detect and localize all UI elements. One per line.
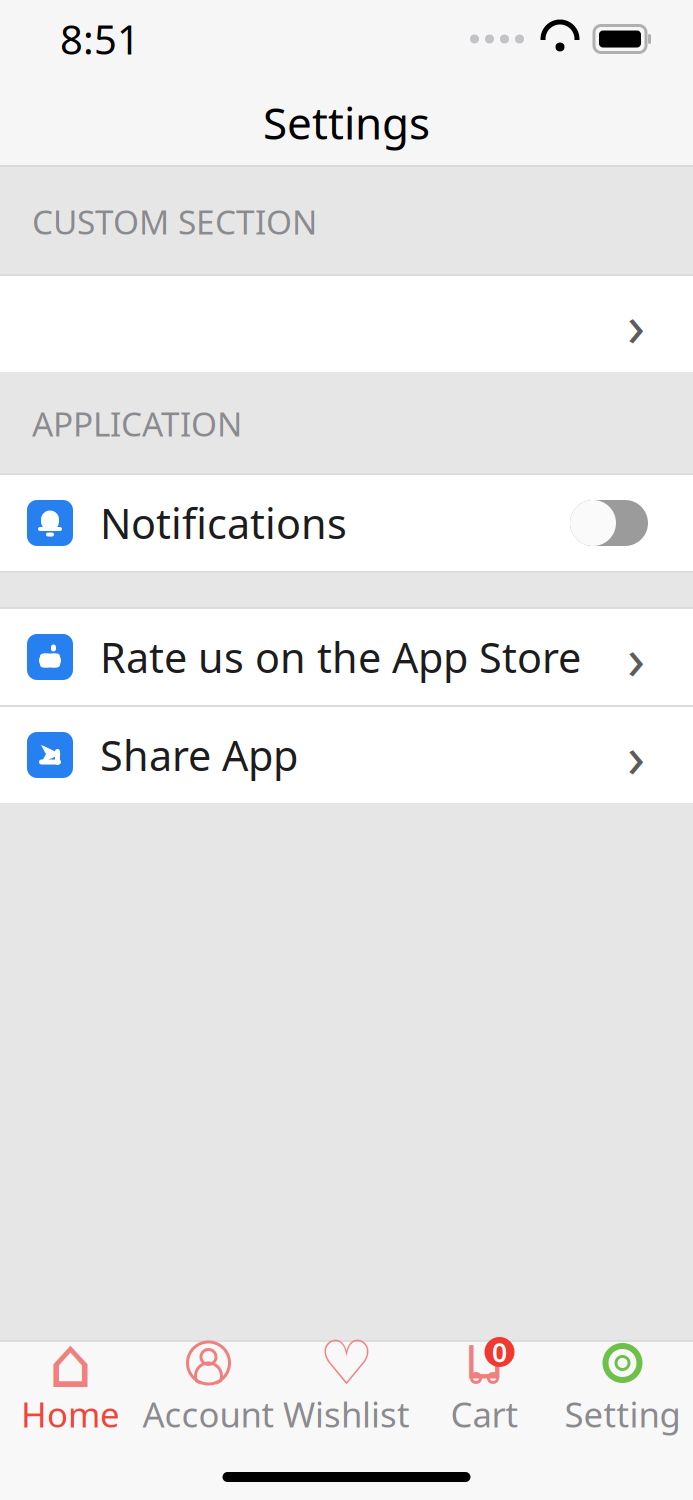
staticText: Account (142, 1391, 274, 1437)
staticText: ⊔ (463, 1330, 505, 1390)
staticText: › (627, 285, 645, 363)
staticText: Setting (564, 1391, 680, 1437)
staticText: CUSTOM SECTION (32, 199, 317, 244)
staticText: ➤ (37, 736, 62, 770)
staticText: Wishlist (283, 1391, 410, 1437)
staticText: ⌂ (48, 1324, 92, 1402)
staticText: › (627, 716, 645, 794)
staticText: Notifications (100, 496, 347, 550)
button[interactable]: Custom section item (0, 276, 693, 372)
button[interactable]: ⊔ (415, 1342, 553, 1434)
button[interactable]: ⌂ (1, 1342, 139, 1434)
button[interactable]: Rate us on the App Store (0, 609, 693, 705)
button[interactable]: Account (139, 1342, 277, 1434)
staticText: ♡ (319, 1328, 374, 1398)
button[interactable]: Notifications (0, 475, 693, 571)
staticText: › (627, 618, 645, 696)
staticText: 0 (492, 1334, 507, 1370)
staticText: Rate us on the App Store (100, 630, 581, 684)
button[interactable]: Setting (553, 1342, 691, 1434)
staticText: Settings (263, 93, 430, 152)
staticText: Share App (100, 728, 298, 782)
staticText: Cart (450, 1391, 518, 1437)
staticText: APPLICATION (32, 401, 242, 446)
staticText: 8:51 (60, 12, 140, 65)
button[interactable]: ♡ (277, 1342, 415, 1434)
staticText: Home (21, 1391, 120, 1437)
button[interactable]: ➤ (0, 707, 693, 803)
